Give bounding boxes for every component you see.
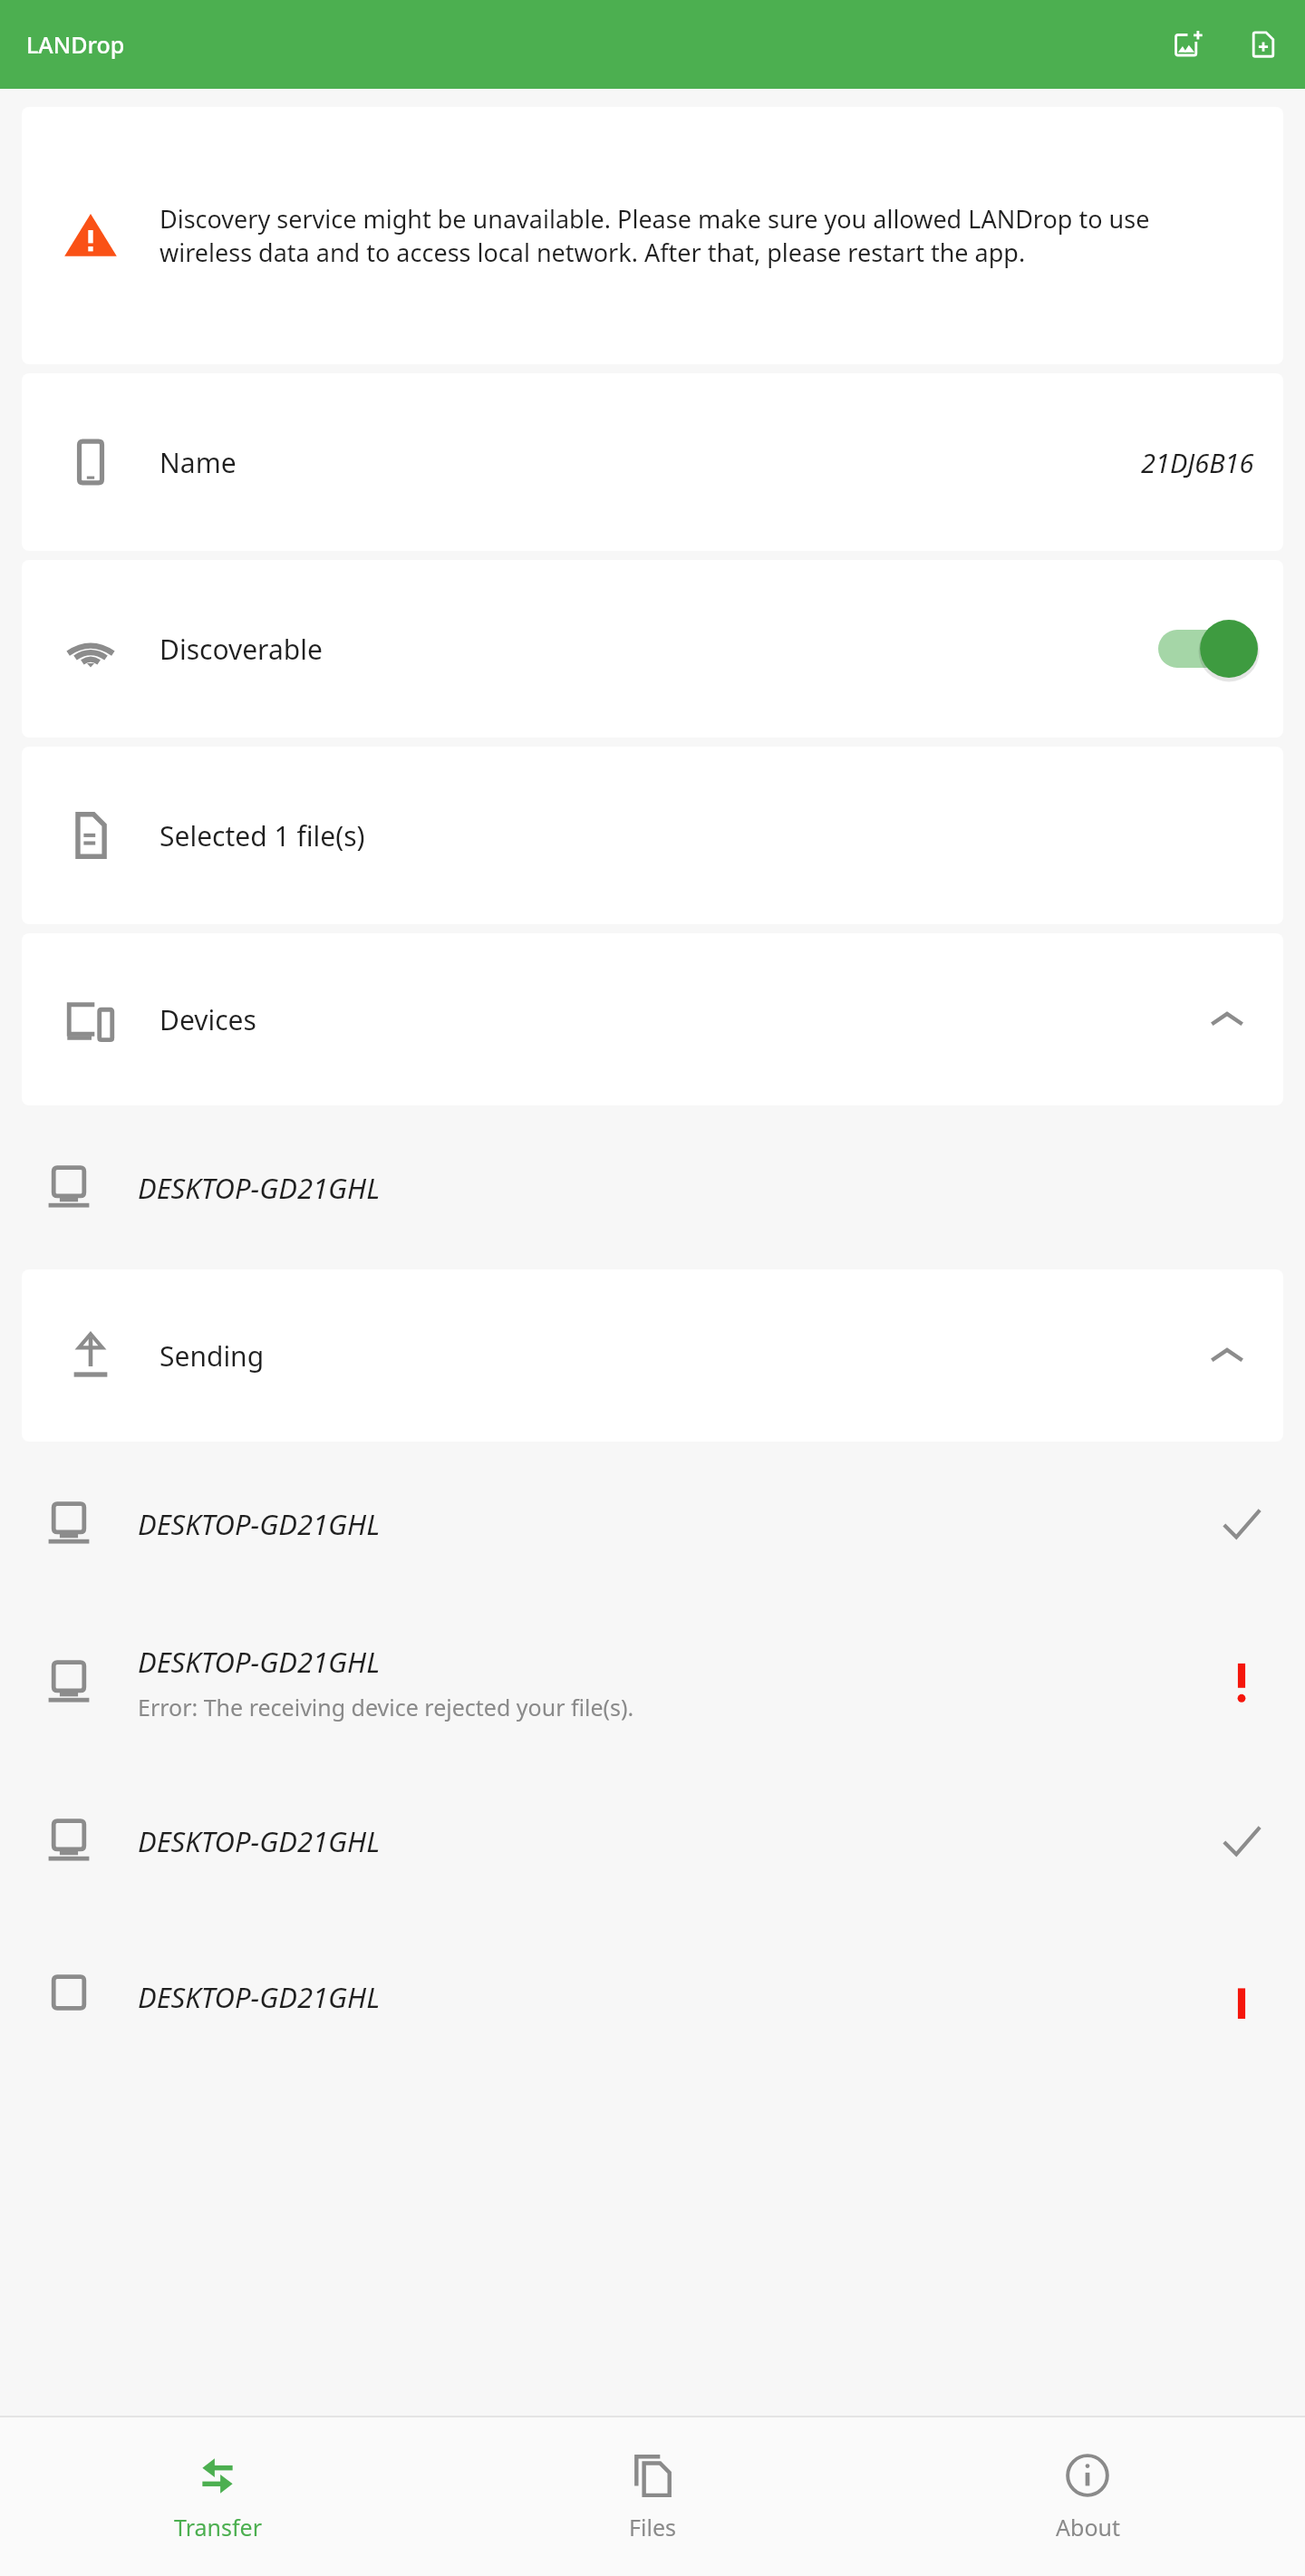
staticText: Transfer [174,2512,262,2542]
staticText: About [1056,2512,1120,2542]
button[interactable]: About [870,2417,1305,2576]
staticText: Name [159,444,237,481]
staticText: DESKTOP-GD21GHL [138,1169,381,1207]
staticText: LANDrop [26,29,125,60]
staticText: DESKTOP-GD21GHL [138,1822,381,1860]
button[interactable]: Add image [1164,19,1214,70]
staticText: 21DJ6B16 [1141,445,1254,480]
button[interactable]: Discovery service might be unavailable. … [22,107,1283,364]
staticText: DESKTOP-GD21GHL [138,1643,381,1681]
staticText: Selected 1 file(s) [159,817,365,854]
button[interactable]: Files [435,2417,870,2576]
staticText: DESKTOP-GD21GHL [138,1505,381,1543]
staticText: Error: The receiving device rejected you… [138,1692,634,1722]
button[interactable]: Name [22,373,1283,551]
button[interactable]: Transfer [0,2417,435,2576]
button[interactable]: DESKTOP-GD21GHL [0,1447,1305,1601]
button[interactable]: Devices [22,933,1283,1105]
button[interactable]: DESKTOP-GD21GHL [0,1603,1305,1762]
staticText: Sending [159,1337,265,1375]
staticText: Devices [159,1001,256,1038]
staticText: Files [629,2512,676,2542]
button[interactable]: Selected 1 file(s) [22,747,1283,924]
button[interactable]: DESKTOP-GD21GHL [0,1920,1305,2074]
button[interactable]: Discoverable [22,560,1283,738]
button[interactable]: DESKTOP-GD21GHL [0,1764,1305,1918]
staticText: Discovery service might be unavailable. … [159,202,1240,269]
button[interactable]: Discoverable toggle [1158,614,1258,683]
button[interactable]: Sending [22,1269,1283,1442]
staticText: DESKTOP-GD21GHL [138,1978,381,2016]
staticText: Discoverable [159,631,323,668]
button[interactable]: Add file [1238,19,1289,70]
button[interactable]: DESKTOP-GD21GHL [0,1111,1305,1265]
